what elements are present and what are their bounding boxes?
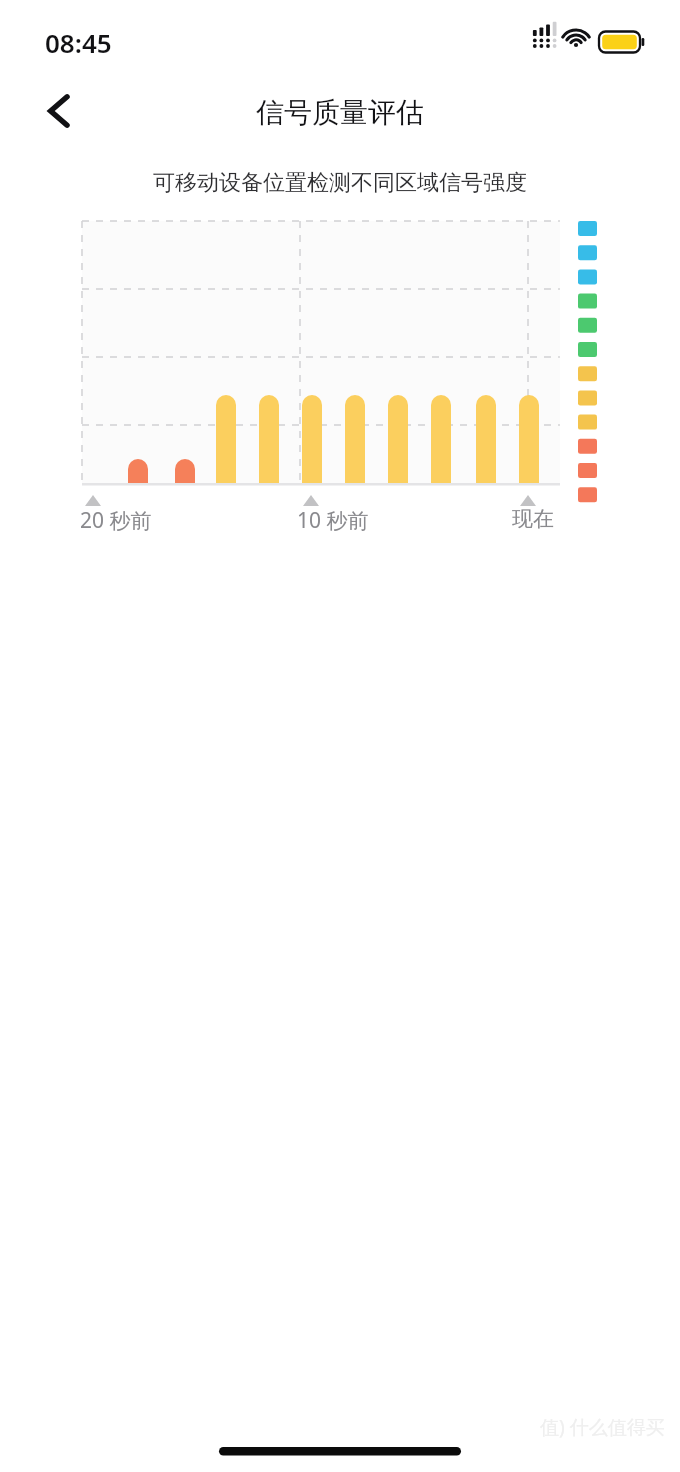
button[interactable]: Back — [28, 80, 90, 142]
staticText: 10 秒前 — [297, 506, 369, 535]
staticText: 信号质量评估 — [256, 95, 424, 130]
staticText: 可移动设备位置检测不同区域信号强度 — [153, 169, 527, 197]
staticText: 08:45 — [45, 25, 112, 60]
staticText: 现在 — [512, 506, 554, 532]
staticText: 20 秒前 — [80, 506, 152, 535]
staticText: 值) 什么值得买 — [540, 1414, 665, 1440]
